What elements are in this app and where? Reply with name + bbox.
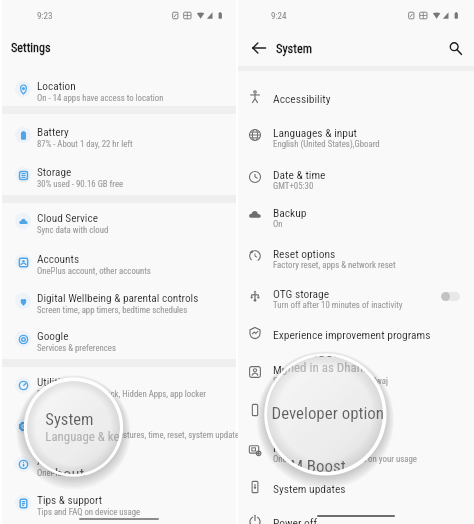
staticText: 30% used - 90.16 GB free <box>37 179 124 189</box>
staticText: RAM Boost <box>271 456 346 472</box>
button[interactable]: Accessibility <box>238 78 474 116</box>
staticText: Cloud Service <box>37 212 98 225</box>
staticText: Date & time <box>273 168 326 181</box>
staticText: System updates <box>273 482 346 495</box>
button[interactable]: Reset options <box>238 237 474 275</box>
staticText: Services & preferences <box>37 343 116 353</box>
staticText: Tips & support <box>37 494 103 507</box>
staticText: Screen time, app timers, bedtime schedul… <box>37 305 188 315</box>
staticText: System <box>45 410 94 429</box>
staticText: Storage <box>37 166 72 179</box>
staticText: Signed in as Dhananjay Bhardwaj <box>271 360 383 375</box>
staticText: Signed in as Dhananjay Bhardwaj <box>273 376 388 386</box>
button[interactable]: Location <box>2 70 236 108</box>
staticText: About phone <box>37 455 94 468</box>
button[interactable]: Multi-user <box>238 353 474 391</box>
button[interactable]: About phone <box>2 445 236 483</box>
staticText: Utilities <box>37 376 71 389</box>
button[interactable]: System updates <box>238 468 474 506</box>
staticText: Languages & input <box>273 126 357 139</box>
staticText: GMT+05:30 <box>273 181 314 191</box>
staticText: Google <box>37 330 69 343</box>
staticText: RAM Boost <box>273 441 324 454</box>
button[interactable]: Accounts <box>2 243 236 281</box>
staticText: Backup <box>273 206 307 219</box>
button[interactable]: Utilities <box>2 366 236 404</box>
button[interactable]: Backup <box>238 196 474 234</box>
button[interactable]: Tips & support <box>2 484 236 522</box>
staticText: Language & keyboard, gestures, time, res… <box>37 430 244 440</box>
button[interactable]: Search <box>444 37 466 59</box>
staticText: Turn off after 10 minutes of inactivity <box>273 300 403 310</box>
staticText: System <box>37 417 70 430</box>
staticText: Language & keyboard, gestures, time, res… <box>45 429 120 444</box>
staticText: 9:23 <box>37 11 53 22</box>
staticText: System <box>276 41 313 56</box>
staticText: Sync data with cloud <box>37 225 109 235</box>
button[interactable]: Back <box>248 37 270 59</box>
button[interactable]: Developer options <box>238 391 474 429</box>
button[interactable]: RAM Boost <box>238 431 474 469</box>
button[interactable]: Date & time <box>238 158 474 196</box>
staticText: Experience improvement programs <box>273 328 431 341</box>
staticText: Accessibility <box>273 92 331 105</box>
button[interactable]: Cloud Service <box>2 202 236 240</box>
staticText: Multi-user <box>271 356 339 360</box>
staticText: OnePlus RAM Boost based on your usage <box>273 454 417 464</box>
staticText: About phone <box>45 466 120 474</box>
button[interactable]: Battery <box>2 116 236 154</box>
staticText: Battery <box>37 126 69 139</box>
staticText: On - 14 apps have access to location <box>37 93 164 103</box>
staticText: Parallel Apps, App Lock, Hidden Apps, ap… <box>45 381 120 383</box>
staticText: Settings <box>11 41 51 55</box>
staticText: OnePlus 7 Pro <box>37 468 86 478</box>
staticText: Developer options <box>271 403 383 422</box>
button[interactable]: OTG storage <box>238 277 474 315</box>
staticText: Parallel Apps, App Lock, Hidden Apps, ap… <box>37 389 206 399</box>
button[interactable]: Experience improvement programs <box>238 314 474 352</box>
staticText: English (United States),Gboard <box>273 139 380 149</box>
staticText: 9:24 <box>271 11 287 22</box>
button[interactable]: System <box>2 407 236 445</box>
staticText: Tips and FAQ on device usage <box>37 507 141 517</box>
staticText: OnePlus account, other accounts <box>37 266 151 276</box>
staticText: On <box>273 219 283 229</box>
staticText: Power off <box>273 516 318 524</box>
button[interactable]: Power off <box>238 502 474 524</box>
button[interactable]: Google <box>2 320 236 358</box>
staticText: Factory reset, apps & network reset <box>273 260 396 270</box>
button[interactable]: Languages & input <box>238 116 474 154</box>
button[interactable]: Digital Wellbeing & parental controls <box>2 282 236 320</box>
staticText: Developer options <box>273 405 355 418</box>
staticText: Location <box>37 80 76 93</box>
staticText: Multi-user <box>273 363 319 376</box>
staticText: Accounts <box>37 253 80 266</box>
staticText: OTG storage <box>273 287 330 300</box>
staticText: Digital Wellbeing & parental controls <box>37 292 199 305</box>
staticText: Reset options <box>273 247 336 260</box>
staticText: 87% - About 1 day, 22 hr left <box>37 139 133 149</box>
button[interactable]: Storage <box>2 156 236 194</box>
